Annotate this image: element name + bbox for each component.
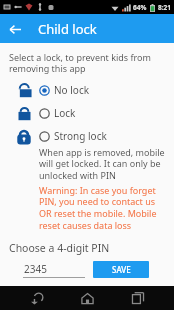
- staticText: 8:21: [158, 3, 171, 12]
- staticText: Lock: [54, 106, 76, 120]
- button[interactable]: Back: [23, 286, 51, 310]
- button[interactable]: Home: [73, 286, 101, 310]
- staticText: SAVE: [112, 264, 131, 275]
- staticText: Child lock: [38, 20, 97, 38]
- button[interactable]: Back: [4, 18, 26, 40]
- staticText: When app is removed, mobile will get loc…: [39, 146, 168, 182]
- button[interactable]: No lock: [9, 80, 168, 100]
- button[interactable]: Lock: [9, 103, 168, 123]
- button[interactable]: Recent apps: [124, 286, 152, 310]
- staticText: 2345: [24, 262, 47, 276]
- button[interactable]: 2345: [23, 262, 85, 278]
- staticText: Warning: In case you forget PIN, you nee…: [39, 184, 168, 232]
- staticText: No lock: [54, 83, 90, 97]
- staticText: Select a lock, to prevent kids from remo…: [9, 51, 168, 75]
- staticText: 64%: [133, 3, 147, 12]
- staticText: Strong lock: [54, 129, 107, 143]
- staticText: Choose a 4-digit PIN: [9, 241, 110, 255]
- button[interactable]: Strong lock: [9, 126, 168, 232]
- button[interactable]: SAVE: [93, 261, 149, 278]
